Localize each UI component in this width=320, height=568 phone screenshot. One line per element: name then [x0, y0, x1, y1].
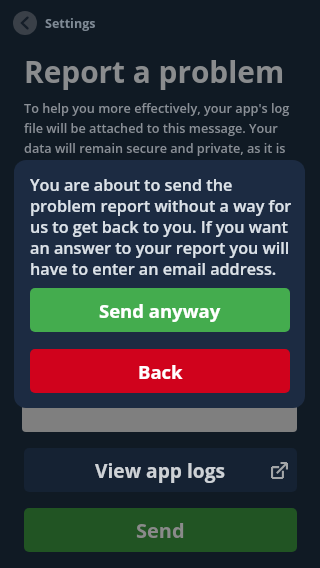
- staticText: Send: [136, 517, 185, 544]
- staticText: View app logs: [95, 457, 226, 483]
- staticText: Send anyway: [99, 298, 221, 323]
- staticText: You are about to send the problem report…: [30, 174, 296, 280]
- staticText: To help you more effectively, your app's…: [24, 99, 292, 176]
- button[interactable]: Send: [24, 508, 297, 552]
- staticText: Settings: [45, 15, 96, 32]
- button[interactable]: Back: [13, 11, 37, 35]
- button[interactable]: Back: [30, 349, 290, 393]
- other: Open app logs externally: [271, 462, 288, 479]
- button[interactable]: [22, 188, 297, 432]
- staticText: Back: [138, 359, 183, 384]
- staticText: Report a problem: [24, 51, 285, 92]
- button[interactable]: Send anyway: [30, 288, 290, 332]
- button[interactable]: View app logs: [24, 448, 297, 492]
